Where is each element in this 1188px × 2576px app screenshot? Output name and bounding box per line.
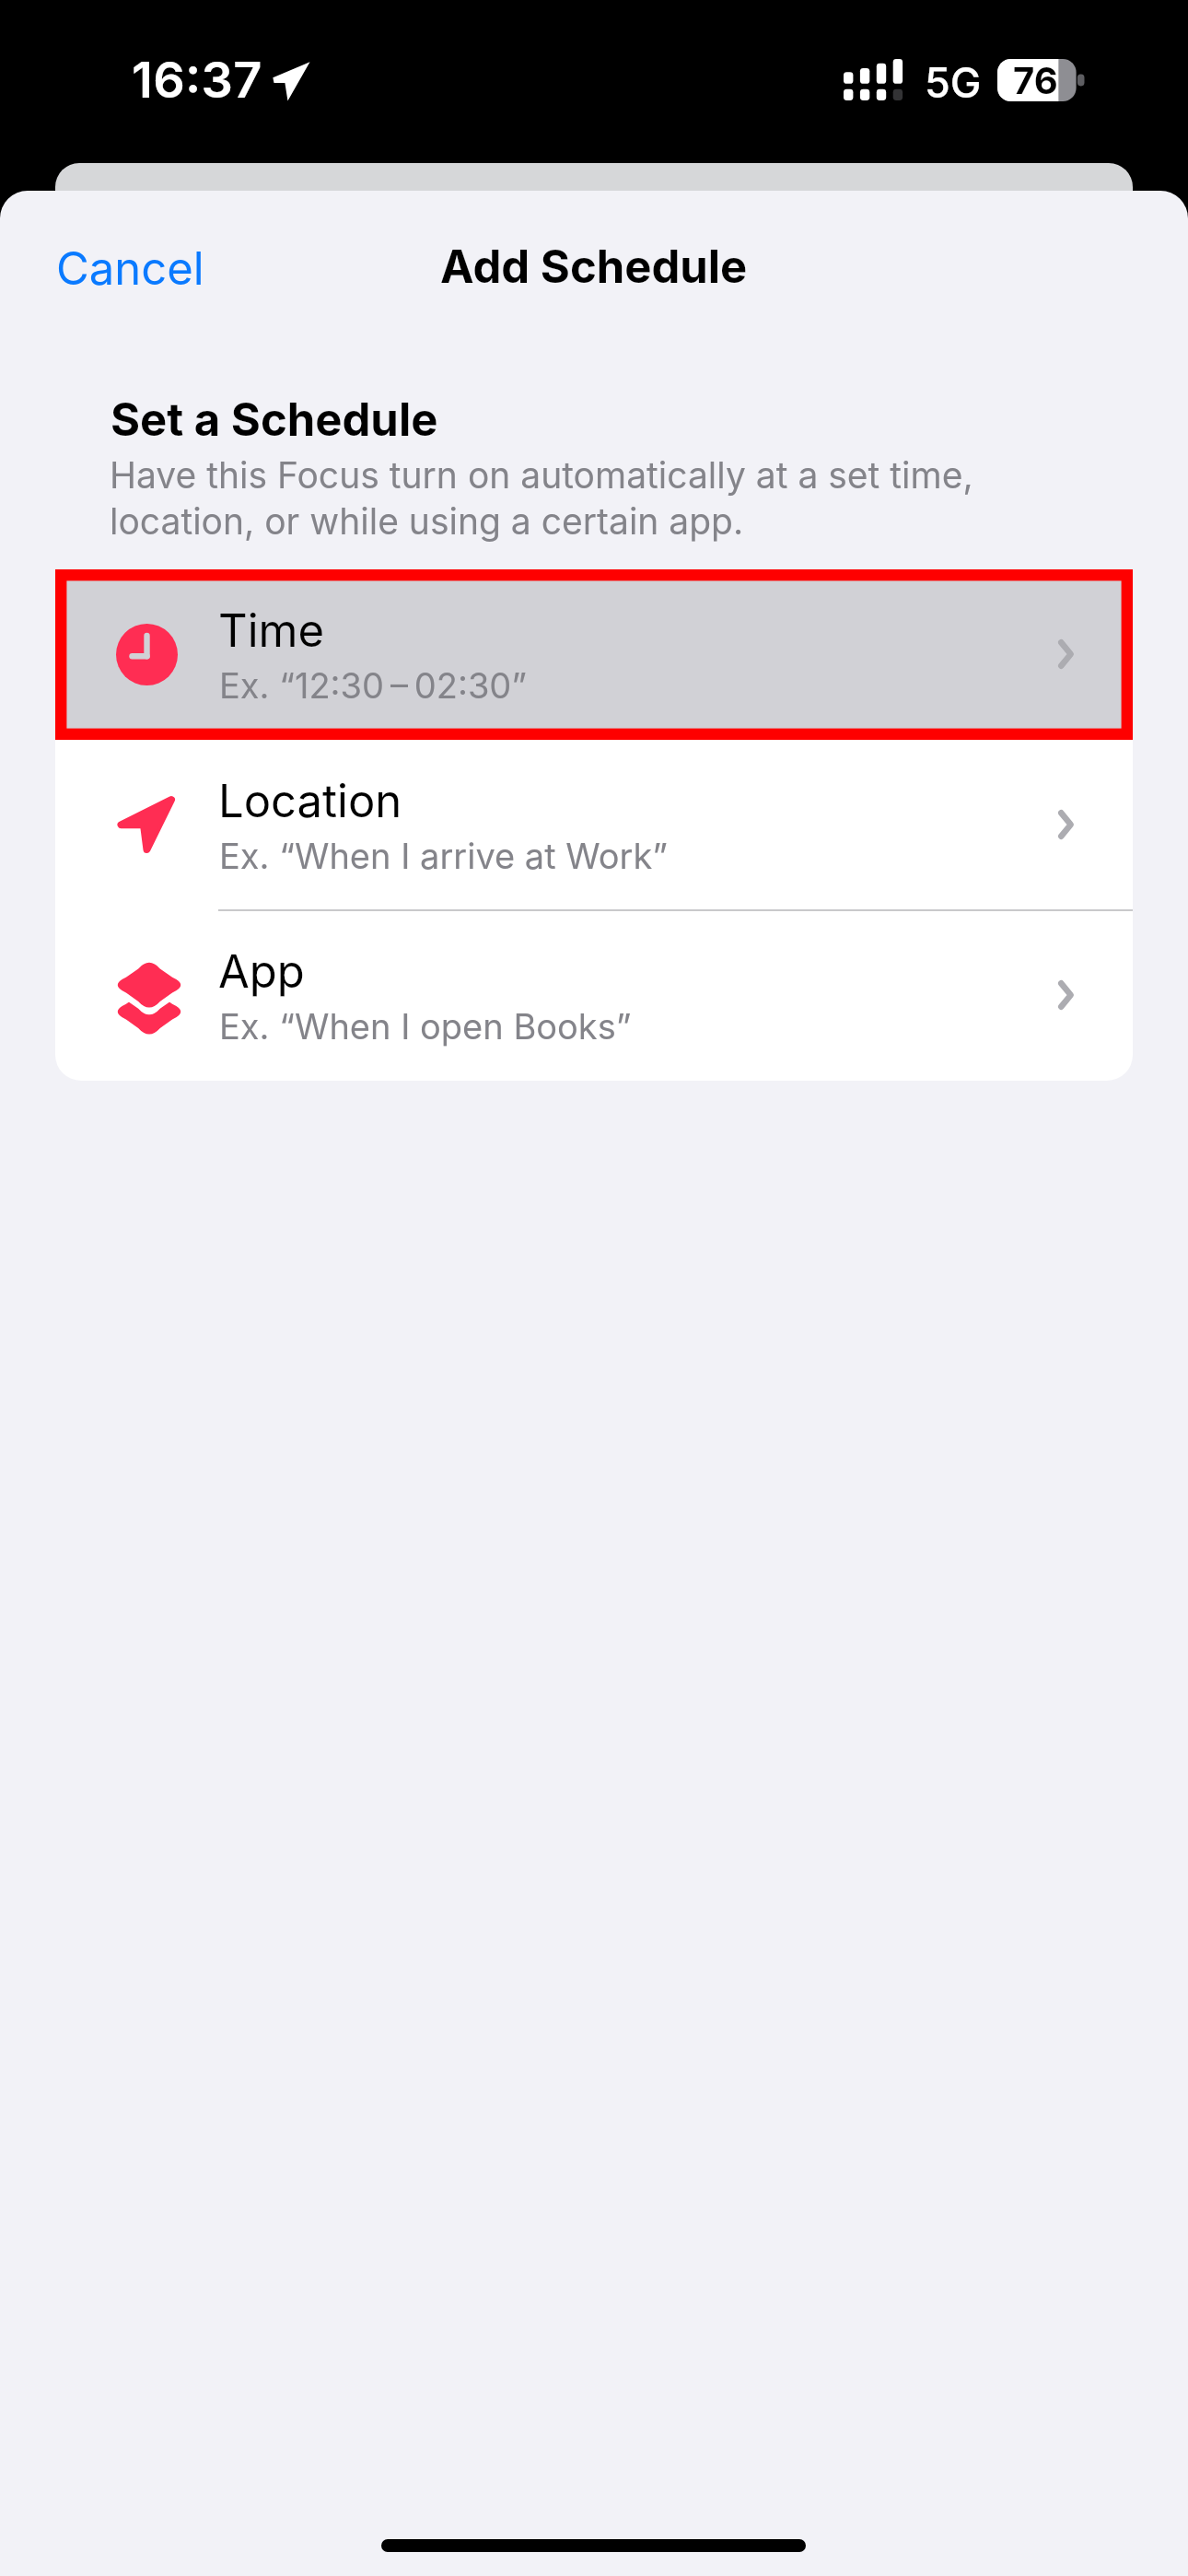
staticText: 16:37 <box>132 50 262 110</box>
staticText: Time <box>218 603 324 658</box>
other: Open Location <box>1058 810 1074 839</box>
other: Cellular signal strength <box>844 57 904 101</box>
button[interactable]: Time <box>55 569 1133 740</box>
staticText: Cancel <box>56 241 204 296</box>
staticText: Ex. “When I open Books” <box>219 1005 632 1048</box>
staticText: 5G <box>925 57 982 107</box>
staticText: 76 <box>1013 58 1058 100</box>
staticText: Ex. “12:30 – 02:30” <box>219 664 528 707</box>
staticText: Ex. “When I arrive at Work” <box>219 835 669 877</box>
staticText: Have this Focus turn on automatically at… <box>110 453 1078 544</box>
other: Location services active <box>271 64 307 96</box>
button[interactable]: Cancel <box>37 224 232 312</box>
other: Open Time <box>1058 639 1074 669</box>
other: Battery 76 percent <box>997 59 1084 101</box>
staticText: Add Schedule <box>440 240 748 294</box>
button[interactable]: Location <box>55 740 1133 910</box>
staticText: Location <box>218 774 402 828</box>
button[interactable]: App <box>55 910 1133 1081</box>
staticText: Set a Schedule <box>111 392 438 447</box>
staticText: App <box>218 944 305 999</box>
other: Open App <box>1058 980 1074 1010</box>
